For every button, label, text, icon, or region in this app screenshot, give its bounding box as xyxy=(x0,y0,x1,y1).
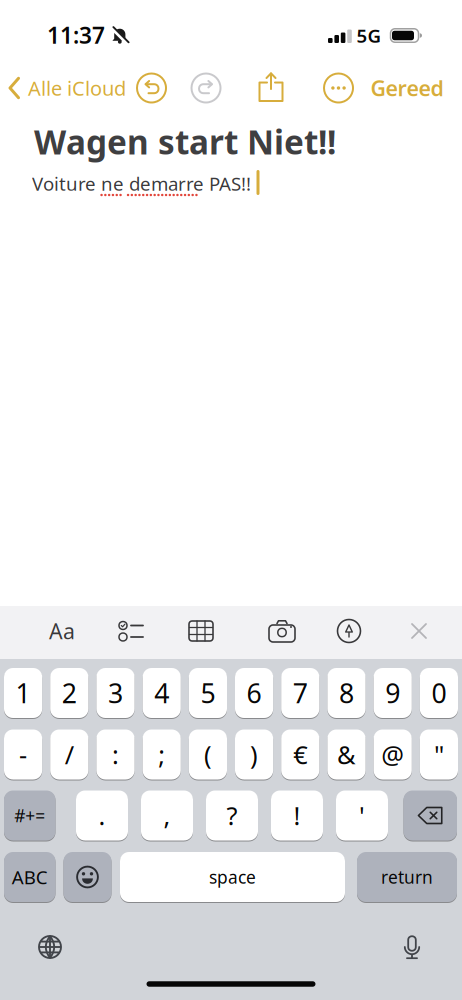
button[interactable]: 5 xyxy=(189,668,227,718)
staticText: Aa xyxy=(49,617,75,645)
button[interactable]: Camera xyxy=(268,620,295,642)
staticText: ; xyxy=(158,738,165,771)
button[interactable]: 4 xyxy=(143,668,181,718)
button[interactable]: ; xyxy=(143,729,181,779)
staticText: Wagen start Niet!! xyxy=(34,119,336,164)
button[interactable]: Redo xyxy=(190,72,222,104)
staticText: " xyxy=(434,738,444,771)
button[interactable]: Emoji xyxy=(63,852,111,902)
staticText: 1 xyxy=(16,675,31,711)
button[interactable]: 8 xyxy=(327,668,366,718)
button[interactable]: 7 xyxy=(281,668,319,718)
staticText: - xyxy=(19,738,27,771)
staticText: . xyxy=(98,799,105,832)
button[interactable]: return xyxy=(357,852,457,902)
button[interactable]: ABC xyxy=(4,852,55,902)
staticText: 6 xyxy=(247,675,262,711)
button[interactable]: Table xyxy=(188,620,213,642)
staticText: @ xyxy=(381,738,404,771)
button[interactable]: . xyxy=(76,790,128,840)
button[interactable]: " xyxy=(420,729,458,779)
button[interactable]: ) xyxy=(235,729,273,779)
staticText: Alle iCloud xyxy=(28,75,126,101)
staticText: ABC xyxy=(12,865,48,889)
staticText: , xyxy=(163,799,170,832)
button[interactable]: space xyxy=(120,852,345,902)
staticText: ( xyxy=(204,738,212,771)
button[interactable]: More xyxy=(322,72,354,104)
button[interactable]: , xyxy=(141,790,193,840)
button[interactable]: 1 xyxy=(4,668,42,718)
button[interactable]: Alle iCloud xyxy=(8,75,126,101)
staticText: Gereed xyxy=(370,74,443,102)
staticText: 3 xyxy=(108,675,123,711)
staticText: 5G xyxy=(356,23,381,48)
button[interactable]: 0 xyxy=(420,668,458,718)
button[interactable]: Next keyboard xyxy=(37,934,63,960)
staticText: 4 xyxy=(154,675,169,711)
button[interactable]: 3 xyxy=(96,668,135,718)
button[interactable]: Checklist xyxy=(118,620,144,642)
staticText: € xyxy=(293,738,307,771)
button[interactable]: : xyxy=(96,729,135,779)
staticText: ? xyxy=(226,799,237,832)
button[interactable]: / xyxy=(50,729,88,779)
staticText: ' xyxy=(359,799,365,832)
button[interactable]: @ xyxy=(374,729,412,779)
button[interactable]: & xyxy=(327,729,366,779)
staticText: space xyxy=(209,865,256,888)
staticText: ! xyxy=(293,799,300,832)
staticText: return xyxy=(381,865,433,888)
staticText: & xyxy=(337,738,356,771)
button[interactable]: ? xyxy=(206,790,258,840)
button[interactable]: Share xyxy=(258,71,283,102)
button[interactable]: Delete xyxy=(403,790,457,840)
staticText: 11:37 xyxy=(47,20,105,50)
button[interactable]: #+= xyxy=(4,790,55,840)
button[interactable]: 6 xyxy=(235,668,273,718)
staticText: 0 xyxy=(431,675,446,711)
button[interactable]: 9 xyxy=(374,668,412,718)
staticText: 7 xyxy=(293,675,308,711)
button[interactable]: Format xyxy=(49,617,75,645)
button[interactable]: - xyxy=(4,729,42,779)
button[interactable]: € xyxy=(281,729,319,779)
button[interactable]: Markup xyxy=(337,619,360,642)
button[interactable]: Undo xyxy=(135,72,167,104)
button[interactable]: ! xyxy=(271,790,323,840)
button[interactable]: ( xyxy=(189,729,227,779)
staticText: 8 xyxy=(339,675,354,711)
staticText: 9 xyxy=(385,675,400,711)
button[interactable]: Dictate xyxy=(401,934,423,960)
button[interactable]: Gereed xyxy=(370,74,443,102)
staticText: 5 xyxy=(200,675,215,711)
staticText: #+= xyxy=(14,804,45,827)
staticText: Voiture ne demarre PAS!! xyxy=(32,171,251,196)
button[interactable]: ' xyxy=(336,790,388,840)
staticText: ) xyxy=(250,738,258,771)
staticText: / xyxy=(65,738,74,771)
button[interactable]: 2 xyxy=(50,668,88,718)
button[interactable]: Close xyxy=(410,622,427,639)
staticText: : xyxy=(112,738,119,771)
staticText: 2 xyxy=(62,675,77,711)
